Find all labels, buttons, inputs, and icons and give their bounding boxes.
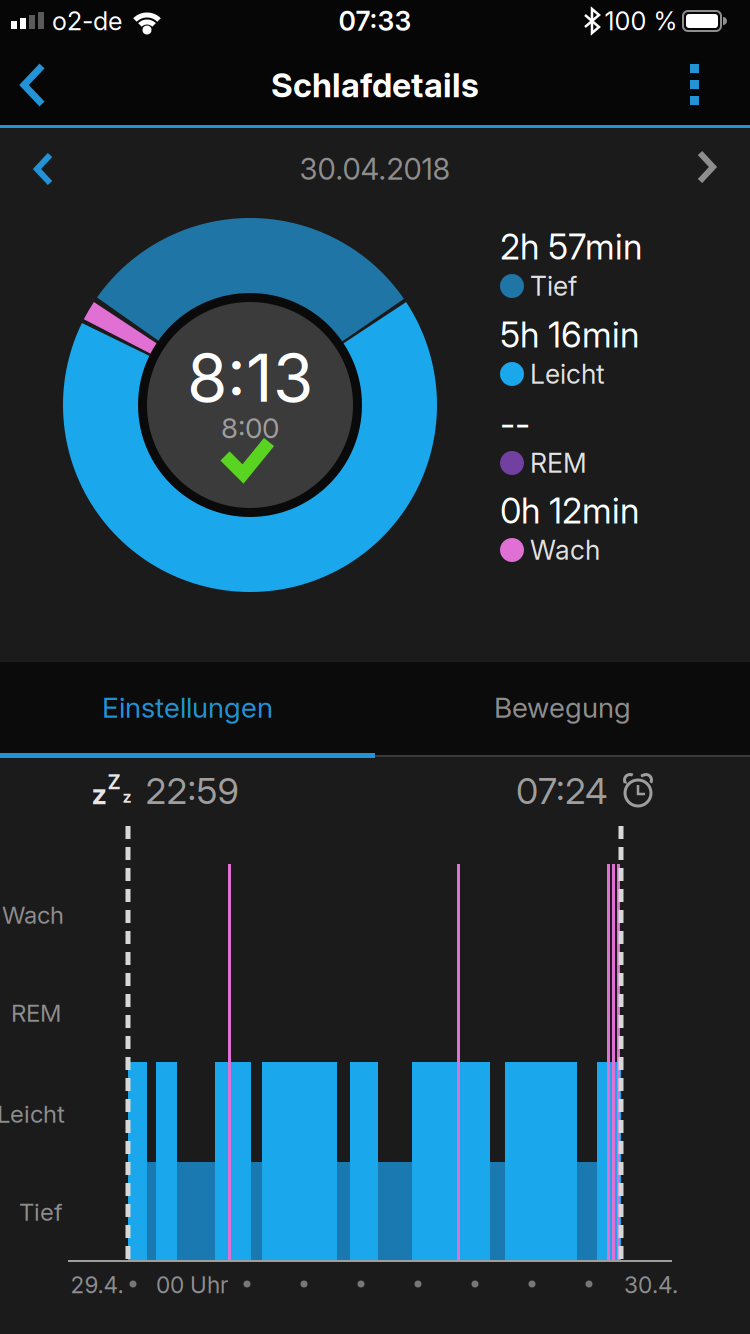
staticText: Leicht (0, 1100, 65, 1128)
staticText: z (91, 777, 106, 810)
staticText: -- (500, 404, 530, 444)
button[interactable]: Bewegung (375, 662, 750, 753)
staticText: 100 % (604, 6, 677, 36)
button[interactable]: Back (4, 50, 64, 120)
staticText: 29.4. (70, 1272, 123, 1298)
staticText: 30.04.2018 (299, 152, 450, 186)
staticText: Schlafdetails (271, 65, 479, 105)
staticText: REM (530, 447, 587, 479)
staticText: 07:24 (516, 770, 608, 812)
staticText: Tief (19, 1198, 63, 1226)
staticText: 8:00 (221, 411, 279, 444)
staticText: 22:59 (145, 770, 238, 812)
staticText: 00 Uhr (156, 1272, 228, 1298)
staticText: 07:33 (338, 5, 411, 37)
staticText: Einstellungen (102, 691, 273, 724)
staticText: o2-de (52, 6, 122, 36)
button[interactable]: Next day (676, 138, 736, 198)
button[interactable]: More (672, 49, 716, 119)
staticText: Wach (2, 901, 64, 929)
staticText: Tief (530, 270, 577, 302)
staticText: Z (107, 770, 120, 794)
staticText: z (122, 788, 131, 806)
staticText: 2h 57min (500, 227, 642, 267)
staticText: 30.4. (624, 1272, 678, 1298)
staticText: 5h 16min (500, 315, 639, 355)
staticText: REM (11, 999, 61, 1027)
staticText: 0h 12min (500, 491, 639, 531)
button[interactable]: Previous day (14, 138, 74, 198)
staticText: Wach (530, 534, 600, 566)
staticText: 8:13 (187, 339, 313, 417)
staticText: Bewegung (494, 691, 631, 724)
staticText: Leicht (530, 358, 605, 390)
button[interactable]: Einstellungen (0, 662, 375, 753)
